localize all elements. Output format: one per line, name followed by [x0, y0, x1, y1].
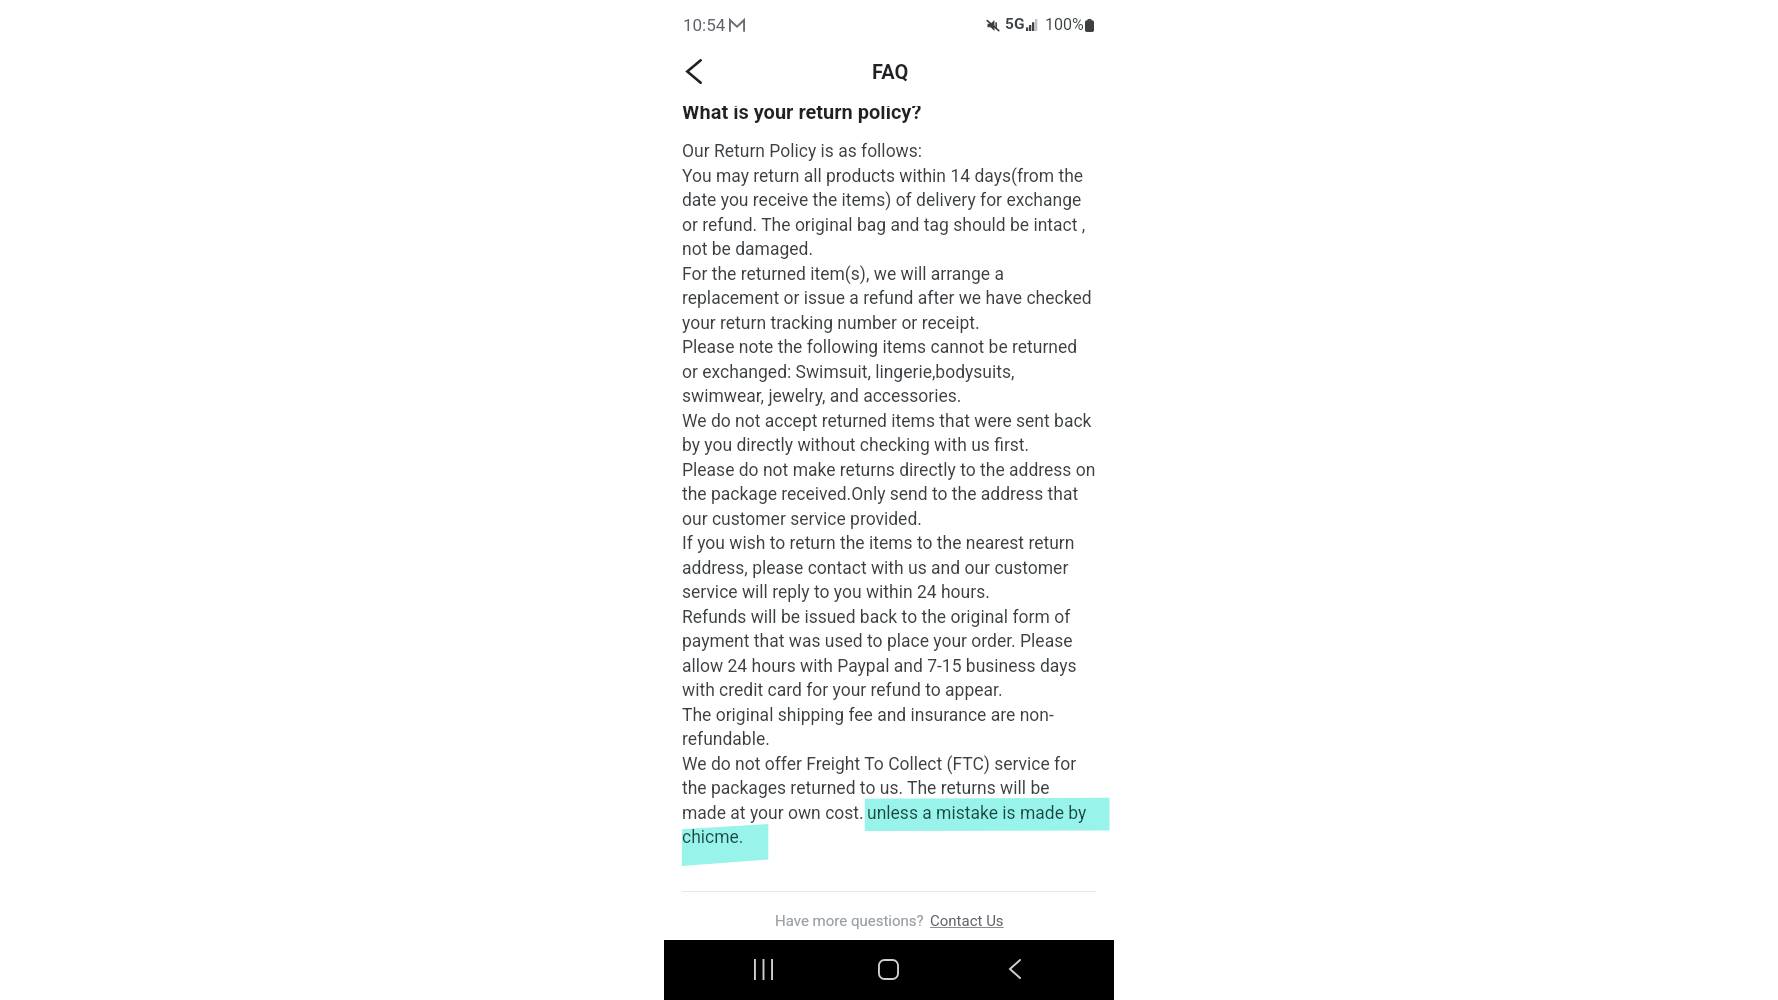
- button[interactable]: Back: [670, 47, 718, 95]
- staticText: 100%: [1045, 15, 1084, 34]
- staticText: or refund. The original bag and tag shou…: [682, 215, 1086, 236]
- staticText: allow 24 hours with Paypal and 7-15 busi…: [682, 656, 1077, 677]
- staticText: 10:54: [683, 15, 726, 35]
- button[interactable]: Recent apps: [739, 945, 787, 993]
- staticText: the package received.Only send to the ad…: [682, 484, 1079, 505]
- staticText: 5G: [1005, 15, 1025, 33]
- staticText: We do not offer Freight To Collect (FTC)…: [682, 754, 1077, 775]
- staticText: or exchanged: Swimsuit, lingerie,bodysui…: [682, 362, 1015, 383]
- staticText: not be damaged.: [682, 239, 814, 260]
- staticText: Please note the following items cannot b…: [682, 337, 1078, 358]
- staticText: with credit card for your refund to appe…: [682, 680, 1003, 701]
- staticText: payment that was used to place your orde…: [682, 631, 1073, 652]
- button[interactable]: Contact Us: [930, 912, 1004, 930]
- staticText: refundable.: [682, 729, 770, 750]
- button[interactable]: Home: [864, 945, 912, 993]
- staticText: made at your own cost.: [682, 803, 868, 824]
- staticText: chicme.: [682, 827, 744, 848]
- staticText: our customer service provided.: [682, 509, 922, 530]
- button[interactable]: Back: [991, 945, 1039, 993]
- staticText: date you receive the items) of delivery …: [682, 190, 1082, 211]
- staticText: We do not accept returned items that wer…: [682, 411, 1092, 432]
- staticText: your return tracking number or receipt.: [682, 313, 980, 334]
- staticText: the packages returned to us. The returns…: [682, 778, 1050, 799]
- staticText: For the returned item(s), we will arrang…: [682, 264, 1004, 285]
- button[interactable]: What is your return policy?: [664, 106, 1114, 130]
- staticText: replacement or issue a refund after we h…: [682, 288, 1092, 309]
- staticText: Have more questions?: [775, 912, 924, 930]
- staticText: address, please contact with us and our …: [682, 558, 1069, 579]
- staticText: Refunds will be issued back to the origi…: [682, 607, 1071, 628]
- staticText: by you directly without checking with us…: [682, 435, 1030, 456]
- staticText: What is your return policy?: [682, 106, 922, 123]
- staticText: FAQ: [872, 60, 909, 83]
- staticText: swimwear, jewelry, and accessories.: [682, 386, 962, 407]
- staticText: service will reply to you within 24 hour…: [682, 582, 990, 603]
- staticText: If you wish to return the items to the n…: [682, 533, 1075, 554]
- staticText: Contact Us: [930, 912, 1004, 930]
- staticText: You may return all products within 14 da…: [682, 166, 1084, 187]
- staticText: The original shipping fee and insurance …: [682, 705, 1054, 726]
- staticText: unless a mistake is made by: [867, 803, 1087, 824]
- staticText: Please do not make returns directly to t…: [682, 460, 1096, 481]
- staticText: Our Return Policy is as follows:: [682, 141, 923, 162]
